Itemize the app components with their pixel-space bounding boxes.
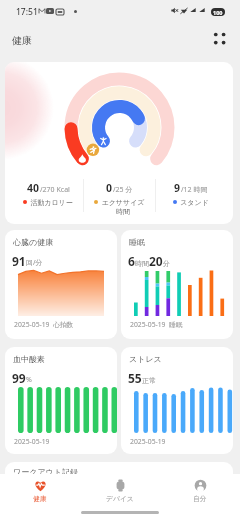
button[interactable]: デバイス <box>80 474 160 508</box>
button[interactable]: ストレス <box>121 347 233 454</box>
staticText: 9 <box>174 181 181 195</box>
staticText: 99 <box>12 370 26 386</box>
staticText: /12 時間 <box>181 185 208 195</box>
staticText: 活動カロリー <box>30 198 73 207</box>
staticText: 91 <box>12 253 26 269</box>
staticText: 2025-05-19 心拍数 <box>14 320 74 329</box>
staticText: 0 <box>106 181 113 195</box>
staticText: ワークアウト記録 <box>13 467 78 477</box>
staticText: 17:51 <box>16 6 38 18</box>
staticText: /25 分 <box>113 185 133 195</box>
staticText: エクササイズ時間 <box>101 198 145 216</box>
staticText: 分 <box>163 259 170 268</box>
staticText: 睡眠 <box>129 237 145 247</box>
staticText: 6 <box>128 253 135 269</box>
staticText: 2025-05-19 <box>130 437 166 446</box>
staticText: 心臓の健康 <box>13 237 54 247</box>
staticText: % <box>26 375 32 385</box>
staticText: 時間 <box>135 259 149 268</box>
button[interactable]: ワークアウト記録 <box>5 462 233 502</box>
staticText: 40 <box>27 181 40 195</box>
staticText: 55 <box>128 370 142 386</box>
button[interactable]: More options <box>207 26 233 52</box>
staticText: 100 <box>213 9 223 16</box>
staticText: 血中酸素 <box>13 354 45 364</box>
staticText: 20 <box>149 253 163 269</box>
staticText: 回/分 <box>26 258 43 268</box>
staticText: ストレス <box>129 354 162 364</box>
button[interactable]: 睡眠 <box>121 230 233 339</box>
staticText: スタンド <box>180 198 209 207</box>
staticText: /270 Kcal <box>40 185 70 195</box>
staticText: 自分 <box>193 494 207 503</box>
button[interactable]: 40 <box>5 62 233 224</box>
staticText: 正常 <box>142 376 156 385</box>
staticText: 健康 <box>33 494 47 503</box>
button[interactable]: 心臓の健康 <box>5 230 117 339</box>
button[interactable]: 血中酸素 <box>5 347 117 454</box>
button[interactable]: 自分 <box>160 474 240 508</box>
staticText: 健康 <box>12 34 32 47</box>
staticText: デバイス <box>106 494 134 503</box>
button[interactable]: 健康 <box>0 474 80 508</box>
staticText: 2025-05-19 <box>14 437 50 446</box>
staticText: 2025-05-19 睡眠 <box>130 320 183 329</box>
